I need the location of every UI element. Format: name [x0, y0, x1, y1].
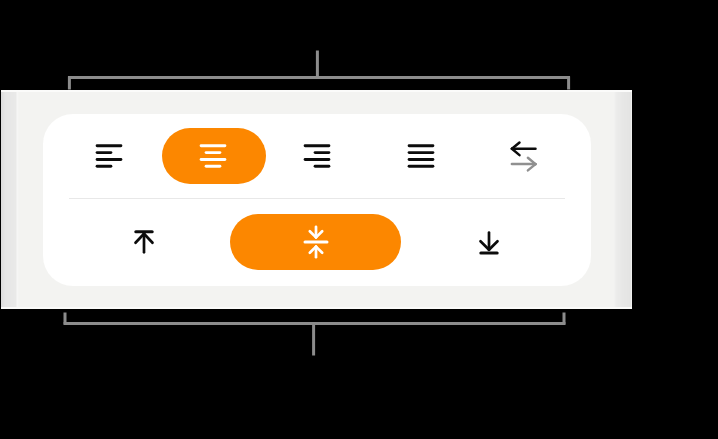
button[interactable]: Align centre: [161, 114, 265, 198]
button[interactable]: Align middle: [229, 198, 402, 285]
button[interactable]: Align right: [265, 114, 369, 198]
button[interactable]: Justify: [369, 114, 473, 198]
button[interactable]: Align left: [57, 114, 161, 198]
button[interactable]: Text direction: [472, 114, 576, 198]
button[interactable]: Align bottom: [402, 198, 575, 285]
button[interactable]: Align top: [57, 198, 230, 285]
